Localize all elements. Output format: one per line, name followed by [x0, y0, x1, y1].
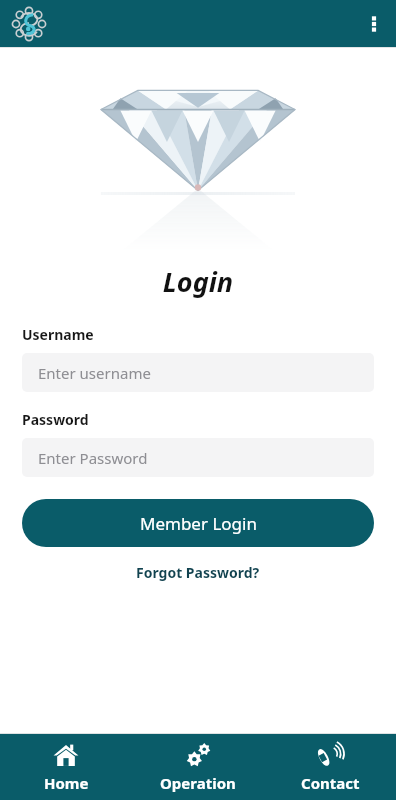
- staticText: Enter username: [38, 363, 151, 383]
- button[interactable]: Contact: [264, 734, 396, 800]
- staticText: Operation: [160, 773, 236, 793]
- button[interactable]: Enter username: [22, 353, 374, 392]
- staticText: Enter Password: [38, 448, 148, 468]
- staticText: Home: [44, 773, 89, 793]
- button[interactable]: More options: [352, 2, 396, 46]
- button[interactable]: Operation: [132, 734, 264, 800]
- staticText: Forgot Password?: [136, 563, 260, 582]
- button[interactable]: Home: [0, 734, 132, 800]
- button[interactable]: Enter Password: [22, 438, 374, 477]
- staticText: Username: [22, 325, 94, 344]
- staticText: Password: [22, 410, 89, 429]
- button[interactable]: Member Login: [22, 499, 374, 547]
- staticText: Login: [0, 263, 396, 300]
- button[interactable]: Forgot Password?: [130, 561, 266, 584]
- staticText: Member Login: [140, 512, 257, 535]
- button[interactable]: App logo: [8, 3, 50, 45]
- staticText: Contact: [301, 773, 360, 793]
